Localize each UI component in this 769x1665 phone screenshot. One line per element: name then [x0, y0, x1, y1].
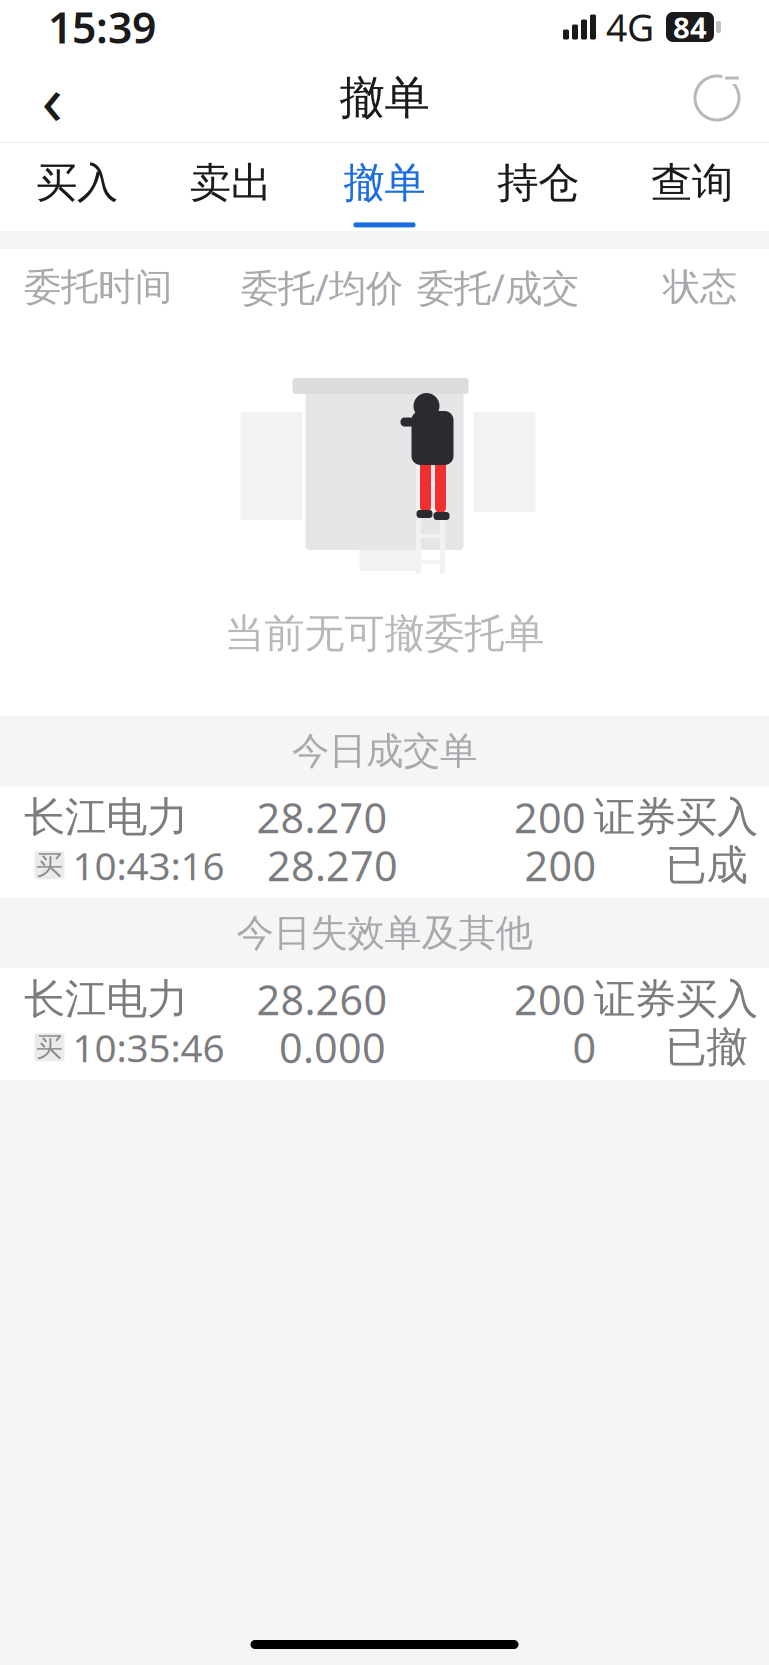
button[interactable]: 卖出: [154, 136, 308, 238]
staticText: 持仓: [497, 158, 579, 208]
staticText: 84: [673, 7, 707, 46]
button[interactable]: 买入: [0, 136, 154, 238]
staticText: 10:35:46: [72, 1021, 224, 1073]
staticText: 今日失效单及其他: [236, 910, 532, 956]
staticText: 卖出: [190, 158, 272, 208]
staticText: 15:39: [48, 0, 156, 55]
staticText: 28.270: [267, 838, 398, 893]
staticText: 买: [36, 849, 63, 882]
staticText: 200: [514, 972, 586, 1027]
staticText: 证券买入: [594, 792, 758, 842]
staticText: 委托时间: [24, 264, 172, 310]
staticText: 状态: [663, 264, 737, 310]
button[interactable]: 持仓: [461, 136, 615, 238]
staticText: 当前无可撤委托单: [224, 609, 544, 658]
staticText: 证券买入: [594, 974, 758, 1024]
staticText: 今日成交单: [292, 728, 477, 774]
button[interactable]: 查询: [615, 136, 769, 238]
button[interactable]: 撤单: [308, 136, 461, 238]
staticText: 买入: [36, 158, 118, 208]
staticText: 撤单: [343, 158, 425, 208]
button[interactable]: Refresh: [679, 60, 755, 136]
staticText: 0.000: [279, 1020, 386, 1075]
staticText: 0: [572, 1020, 596, 1075]
staticText: 10:43:16: [72, 839, 224, 891]
staticText: 委托/成交: [417, 262, 579, 312]
staticText: 委托/均价: [241, 262, 403, 312]
staticText: 200: [514, 790, 586, 845]
button[interactable]: Back: [14, 60, 90, 136]
staticText: 28.260: [256, 972, 387, 1027]
staticText: 查询: [651, 158, 733, 208]
button[interactable]: 长江电力: [0, 968, 769, 1080]
staticText: 长江电力: [24, 974, 188, 1024]
staticText: 已撤: [665, 1022, 747, 1072]
staticText: 长江电力: [24, 792, 188, 842]
staticText: 4G: [606, 2, 654, 52]
staticText: 200: [524, 838, 596, 893]
staticText: 撤单: [339, 70, 429, 126]
staticText: ‹: [41, 52, 62, 144]
staticText: 买: [36, 1031, 63, 1064]
staticText: 已成: [665, 840, 747, 890]
staticText: 28.270: [256, 790, 387, 845]
button[interactable]: 长江电力: [0, 786, 769, 898]
